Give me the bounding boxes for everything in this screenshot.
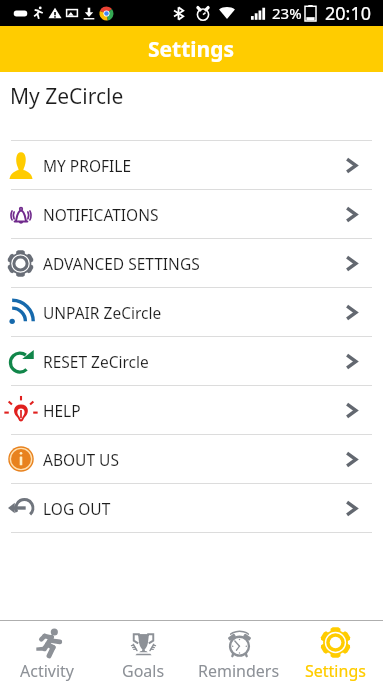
staticText: HELP (43, 400, 81, 421)
button[interactable]: Reminders (191, 621, 287, 682)
staticText: Reminders (198, 660, 280, 682)
button[interactable]: LOG OUT (0, 484, 383, 532)
staticText: ABOUT US (43, 449, 119, 470)
button[interactable]: HELP (0, 386, 383, 434)
staticText: Goals (122, 660, 165, 682)
staticText: 23% (272, 3, 302, 23)
staticText: UNPAIR ZeCircle (43, 302, 162, 323)
staticText: RESET ZeCircle (43, 351, 149, 372)
staticText: NOTIFICATIONS (43, 204, 159, 225)
button[interactable]: MY PROFILE (0, 141, 383, 189)
button[interactable]: Activity (0, 621, 95, 682)
staticText: ADVANCED SETTINGS (43, 253, 200, 274)
staticText: LOG OUT (43, 498, 111, 519)
button[interactable]: NOTIFICATIONS (0, 190, 383, 238)
staticText: Activity (20, 660, 75, 682)
button[interactable]: Settings (287, 621, 383, 682)
button[interactable]: Goals (95, 621, 191, 682)
staticText: My ZeCircle (10, 82, 124, 111)
button[interactable]: ADVANCED SETTINGS (0, 239, 383, 287)
staticText: 20:10 (325, 1, 372, 26)
staticText: Settings (148, 35, 235, 64)
button[interactable]: UNPAIR ZeCircle (0, 288, 383, 336)
staticText: MY PROFILE (43, 155, 132, 176)
staticText: Settings (305, 660, 366, 682)
button[interactable]: RESET ZeCircle (0, 337, 383, 385)
button[interactable]: ABOUT US (0, 435, 383, 483)
